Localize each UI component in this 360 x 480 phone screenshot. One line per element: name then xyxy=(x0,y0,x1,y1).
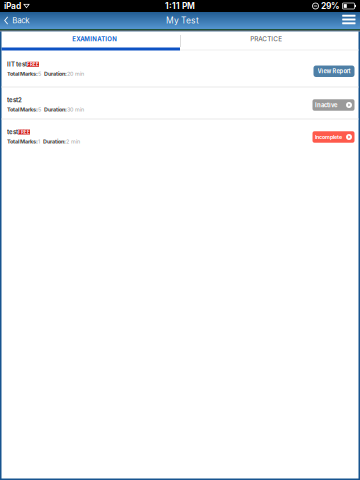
staticText: Total Marks: xyxy=(7,70,38,77)
button[interactable]: PRACTICE xyxy=(180,31,358,50)
staticText: View Report xyxy=(317,68,350,75)
staticText: IIT test xyxy=(7,61,27,68)
staticText: Incomplete xyxy=(315,134,342,140)
staticText: Back xyxy=(12,16,29,25)
staticText: test xyxy=(7,128,18,136)
staticText: 1:11 PM xyxy=(165,1,195,11)
staticText: Duration: xyxy=(44,70,67,77)
staticText: Inactive xyxy=(315,101,337,109)
staticText: 5 xyxy=(38,70,41,77)
staticText: 1 xyxy=(38,138,40,145)
staticText: My Test xyxy=(166,15,199,26)
button[interactable]: Back xyxy=(0,12,35,29)
staticText: Total Marks: xyxy=(7,106,38,113)
staticText: 5 xyxy=(38,106,41,113)
staticText: PRACTICE xyxy=(250,35,282,43)
staticText: Duration: xyxy=(43,138,66,145)
staticText: 20 min xyxy=(67,70,84,77)
staticText: Duration: xyxy=(44,106,67,113)
staticText: FREE xyxy=(18,129,30,135)
staticText: 2 min xyxy=(66,138,80,145)
button[interactable]: View Report xyxy=(313,65,354,77)
button[interactable]: EXAMINATION xyxy=(1,31,180,50)
staticText: FREE xyxy=(27,61,39,67)
staticText: EXAMINATION xyxy=(72,35,117,43)
button[interactable]: Inactive xyxy=(312,99,354,111)
button[interactable]: Menu xyxy=(336,12,360,29)
staticText: test2 xyxy=(7,96,22,104)
staticText: Total Marks: xyxy=(7,138,38,145)
staticText: 30 min xyxy=(67,106,84,113)
staticText: iPad xyxy=(4,1,21,11)
staticText: 29% xyxy=(321,1,340,11)
button[interactable]: Incomplete xyxy=(312,131,354,143)
